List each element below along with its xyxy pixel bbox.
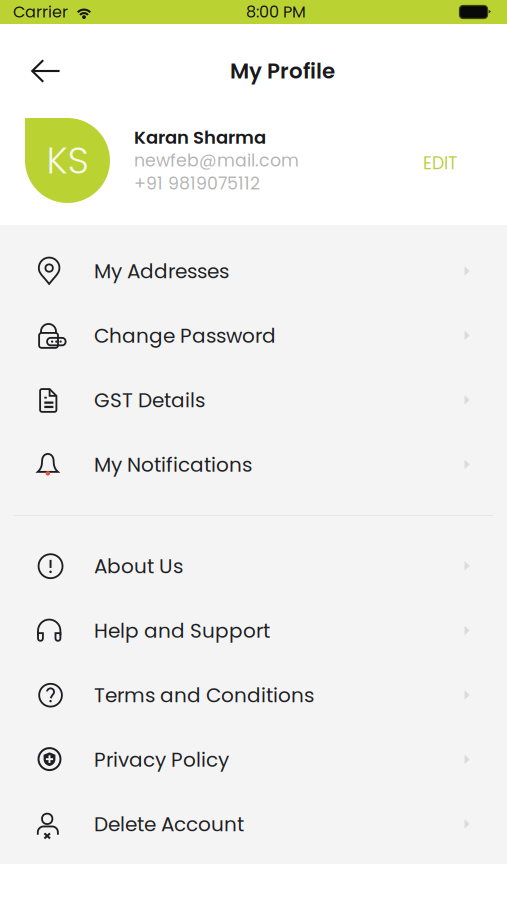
button[interactable]: Privacy Policy xyxy=(0,727,507,792)
button[interactable]: Change Password xyxy=(0,303,507,368)
staticText: 8:00 PM xyxy=(246,1,306,23)
button[interactable]: About Us xyxy=(0,534,507,598)
staticText: Change Password xyxy=(94,322,276,350)
staticText: KS xyxy=(46,134,88,187)
button[interactable]: EDIT xyxy=(423,118,507,175)
staticText: Karan Sharma xyxy=(134,125,266,150)
staticText: My Profile xyxy=(230,56,335,86)
button[interactable]: My Notifications xyxy=(0,432,507,497)
staticText: About Us xyxy=(94,552,183,580)
staticText: newfeb@mail.com xyxy=(134,148,299,173)
staticText: GST Details xyxy=(94,386,205,414)
button[interactable]: Help and Support xyxy=(0,598,507,663)
button[interactable]: GST Details xyxy=(0,368,507,432)
button[interactable]: Terms and Conditions xyxy=(0,663,507,727)
staticText: My Notifications xyxy=(94,451,252,479)
staticText: Privacy Policy xyxy=(94,746,229,774)
button[interactable]: Back xyxy=(16,46,76,96)
staticText: Terms and Conditions xyxy=(94,681,314,709)
staticText: My Addresses xyxy=(94,257,229,285)
button[interactable]: My Addresses xyxy=(0,239,507,303)
staticText: Delete Account xyxy=(94,810,244,838)
button[interactable]: Delete Account xyxy=(0,792,507,856)
staticText: +91 9819075112 xyxy=(134,171,260,196)
staticText: EDIT xyxy=(423,151,457,175)
staticText: Carrier xyxy=(13,1,68,23)
staticText: Help and Support xyxy=(94,617,270,645)
